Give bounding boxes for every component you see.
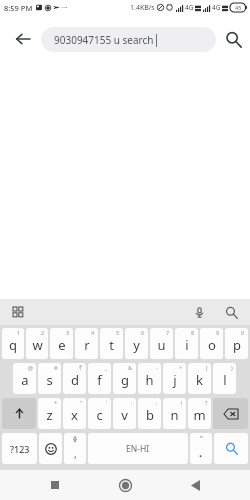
staticText: a (21, 371, 29, 389)
staticText: n (170, 406, 179, 424)
button[interactable]: ; (138, 398, 161, 429)
staticText: v (121, 406, 128, 424)
button[interactable]: 2 (26, 328, 48, 359)
staticText: 1.4KB/s (130, 3, 155, 13)
button[interactable]: : (113, 398, 136, 429)
staticText: - (156, 364, 158, 371)
button[interactable]: + (163, 363, 186, 394)
button[interactable]: 8 (175, 328, 198, 359)
button[interactable]: Back (178, 470, 212, 500)
staticText: ₹ (79, 364, 83, 371)
button[interactable]: Back (9, 25, 37, 53)
staticText: l (223, 371, 227, 389)
staticText: y (133, 336, 140, 354)
staticText: e (58, 336, 66, 354)
staticText: & (128, 364, 133, 371)
button[interactable]: Keyboard options (8, 302, 28, 322)
staticText: " (200, 434, 203, 444)
button[interactable]: Home (108, 470, 142, 500)
button[interactable]: Key (2, 398, 36, 429)
staticText: t (109, 336, 114, 354)
staticText: f (97, 371, 102, 389)
button[interactable]: Search (220, 301, 242, 323)
staticText: _ (105, 364, 108, 371)
staticText: , (74, 447, 77, 461)
button[interactable]: _ (88, 363, 111, 394)
staticText: EN-HI (126, 443, 150, 455)
button[interactable]: 9 (200, 328, 223, 359)
staticText: 1 (17, 329, 21, 336)
staticText: : (131, 399, 133, 406)
button[interactable]: , (64, 433, 86, 464)
button[interactable]: 5 (100, 328, 123, 359)
staticText: " (80, 399, 83, 406)
button[interactable]: ?123 (2, 433, 37, 464)
staticText: 5 (116, 329, 120, 336)
button[interactable]: # (38, 363, 61, 394)
staticText: ?123 (10, 443, 30, 455)
staticText: x (71, 406, 78, 424)
staticText: 45 (235, 4, 242, 11)
staticText: h (145, 371, 154, 389)
staticText: d (71, 371, 79, 389)
staticText: i (185, 336, 189, 354)
staticText: u (157, 336, 166, 354)
button[interactable]: " (63, 398, 86, 429)
staticText: b (146, 406, 154, 424)
staticText: 8 (191, 329, 195, 336)
staticText: ? (205, 399, 208, 406)
button[interactable]: 3 (50, 328, 73, 359)
staticText: 8:59 PM (4, 3, 33, 13)
button[interactable]: Recents (38, 470, 72, 500)
button[interactable]: ? (188, 398, 211, 429)
staticText: 7 (166, 329, 170, 336)
button[interactable]: Search (216, 22, 250, 56)
staticText: * (54, 399, 58, 406)
staticText: s (46, 371, 53, 389)
staticText: k (196, 371, 203, 389)
staticText: # (54, 364, 58, 371)
button[interactable]: 7 (150, 328, 173, 359)
button[interactable]: EN-HI (88, 433, 188, 464)
button[interactable] (39, 433, 62, 464)
button[interactable]: 4 (75, 328, 98, 359)
button[interactable]: @ (13, 363, 36, 394)
button[interactable]: 6 (125, 328, 148, 359)
staticText: @ (28, 364, 33, 371)
button[interactable] (214, 433, 248, 464)
staticText: j (173, 371, 177, 389)
staticText: 2 (41, 329, 45, 336)
staticText: 4 (91, 329, 95, 336)
button[interactable]: 0 (225, 328, 248, 359)
button[interactable]: ! (163, 398, 186, 429)
button[interactable]: 9030947155 u search (41, 27, 216, 52)
staticText: ! (181, 399, 183, 406)
staticText: 9 (216, 329, 220, 336)
button[interactable]: ) (213, 363, 236, 394)
staticText: g (121, 371, 129, 389)
staticText: ··· (62, 3, 68, 13)
button[interactable]: * (38, 398, 61, 429)
staticText: p (233, 336, 241, 354)
staticText: c (96, 406, 103, 424)
staticText: 6 (141, 329, 145, 336)
button[interactable]: Key (213, 398, 248, 429)
staticText: w (32, 336, 43, 354)
staticText: o (208, 336, 216, 354)
button[interactable]: " (190, 433, 212, 464)
button[interactable]: ' (88, 398, 111, 429)
button[interactable]: ( (188, 363, 211, 394)
staticText: ) (231, 364, 233, 371)
button[interactable]: Voice input (188, 301, 210, 323)
button[interactable]: & (113, 363, 136, 394)
staticText: 3 (66, 329, 70, 336)
button[interactable]: - (138, 363, 161, 394)
button[interactable]: 1 (2, 328, 24, 359)
staticText: m (193, 406, 206, 424)
button[interactable]: ₹ (63, 363, 86, 394)
staticText: 4G (212, 3, 221, 12)
staticText: 9030947155 u search (54, 33, 154, 47)
staticText: 0 (241, 329, 245, 336)
staticText: q (9, 336, 17, 354)
staticText: r (84, 336, 90, 354)
